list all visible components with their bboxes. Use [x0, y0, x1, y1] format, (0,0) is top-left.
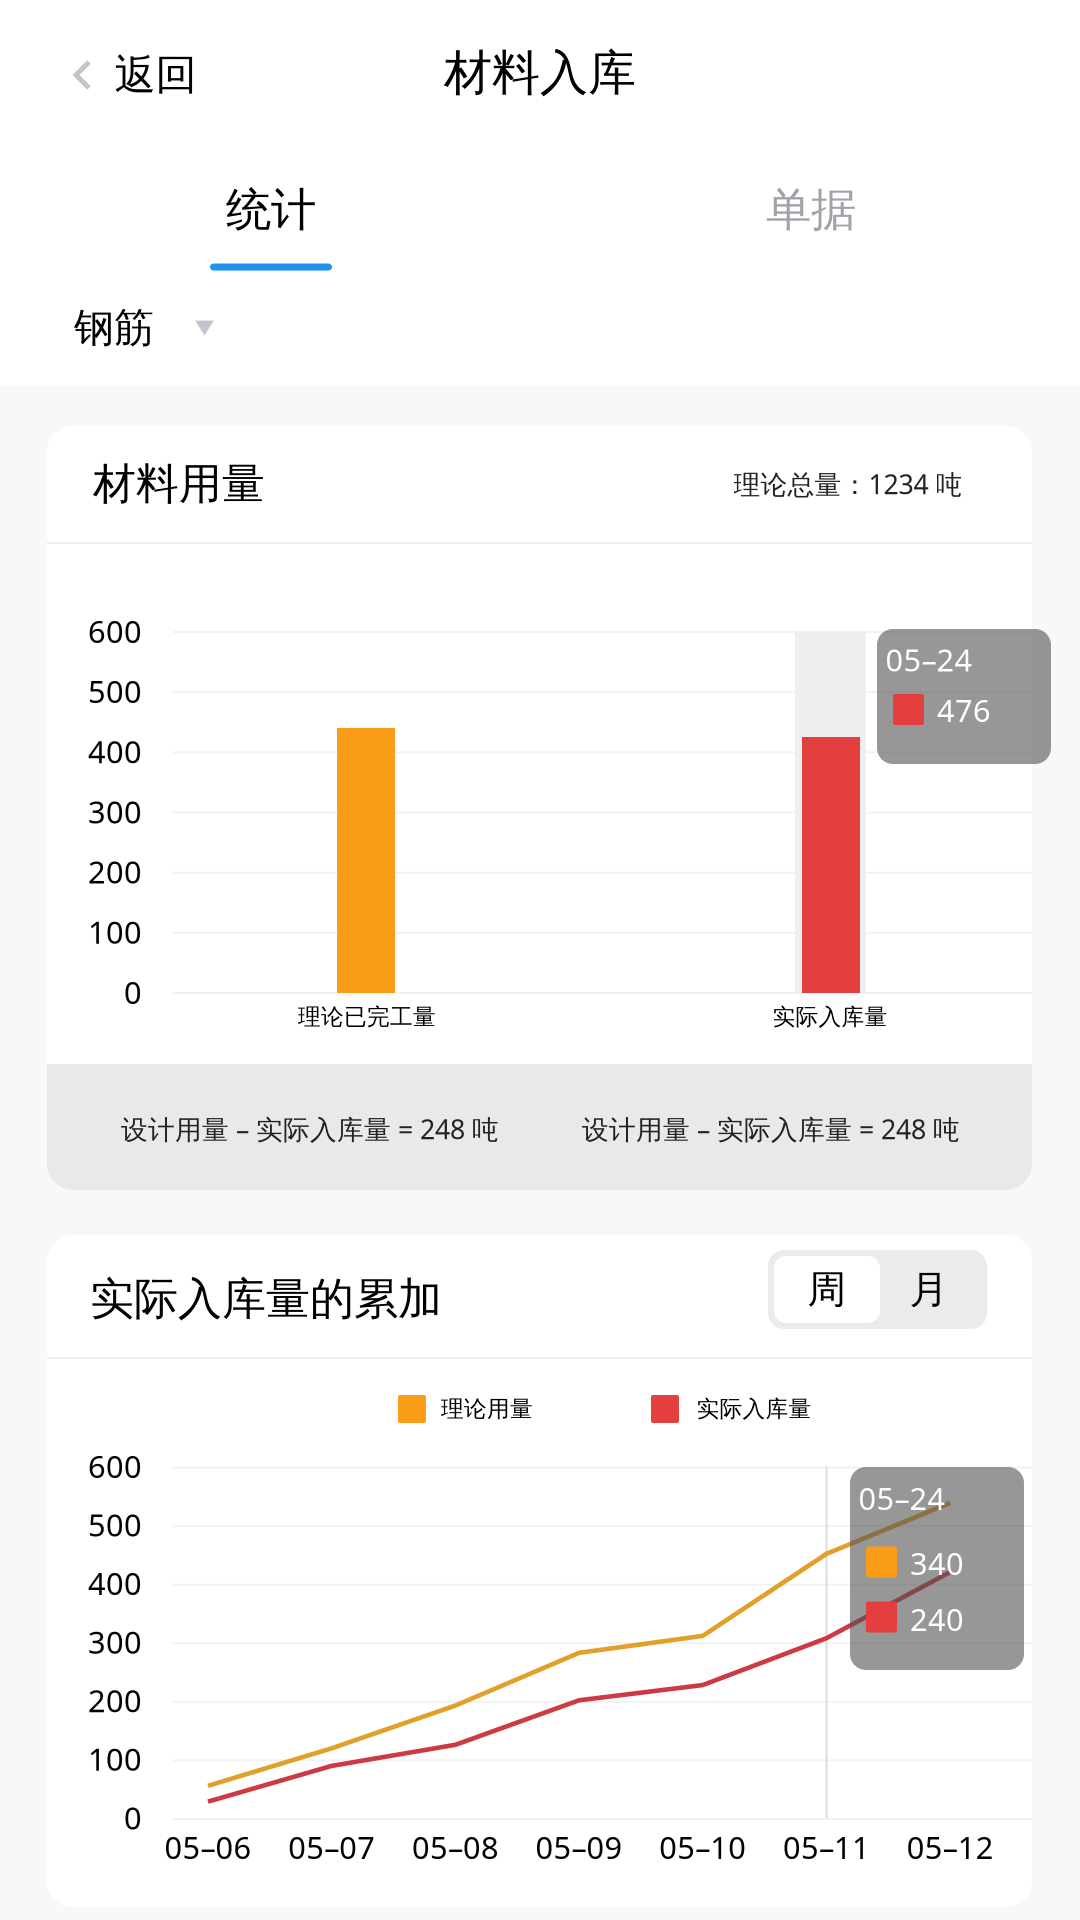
button[interactable]: 月: [876, 1256, 982, 1323]
staticText: 100: [88, 911, 142, 952]
staticText: 材料入库: [444, 43, 636, 102]
staticText: 300: [88, 1621, 142, 1662]
staticText: 设计用量 – 实际入库量 = 248 吨: [582, 1111, 960, 1147]
staticText: 05–10: [659, 1827, 746, 1867]
staticText: 实际入库量: [772, 1003, 887, 1031]
staticText: 600: [88, 1446, 142, 1486]
staticText: 300: [88, 791, 142, 832]
staticText: 476: [937, 690, 991, 730]
staticText: 0: [124, 972, 142, 1012]
staticText: 统计: [226, 182, 316, 238]
staticText: 周: [807, 1266, 846, 1313]
staticText: 05–11: [783, 1827, 870, 1867]
staticText: 实际入库量: [696, 1395, 811, 1423]
staticText: 200: [88, 851, 142, 892]
staticText: 05–07: [288, 1827, 375, 1867]
staticText: 05–08: [412, 1827, 499, 1867]
staticText: 单据: [766, 182, 856, 238]
staticText: 05–09: [536, 1827, 623, 1867]
staticText: 600: [88, 611, 142, 651]
staticText: 05–24: [885, 639, 972, 680]
staticText: 返回: [114, 50, 196, 100]
staticText: 理论用量: [441, 1395, 533, 1423]
staticText: 理论已完工量: [298, 1003, 436, 1031]
button[interactable]: 统计: [1, 154, 541, 266]
staticText: 钢筋: [74, 303, 154, 352]
staticText: 400: [88, 1563, 142, 1603]
staticText: 340: [910, 1543, 964, 1583]
staticText: 月: [909, 1266, 948, 1313]
staticText: 理论总量：1234 吨: [733, 466, 962, 502]
staticText: 实际入库量的累加: [90, 1272, 442, 1326]
staticText: 500: [88, 1504, 142, 1545]
button[interactable]: 单据: [541, 154, 1080, 266]
button[interactable]: 钢筋: [44, 282, 244, 374]
staticText: 05–12: [907, 1827, 994, 1867]
button[interactable]: 返回: [22, 20, 246, 130]
button[interactable]: 周: [774, 1256, 880, 1323]
staticText: 100: [88, 1738, 142, 1779]
staticText: 材料用量: [93, 458, 265, 510]
staticText: 设计用量 – 实际入库量 = 248 吨: [121, 1111, 499, 1147]
staticText: 200: [88, 1680, 142, 1721]
staticText: 0: [124, 1797, 142, 1838]
staticText: 240: [910, 1599, 964, 1639]
staticText: 05–06: [164, 1827, 251, 1867]
staticText: 05–24: [858, 1478, 945, 1518]
staticText: 400: [88, 731, 142, 772]
staticText: 500: [88, 671, 142, 711]
